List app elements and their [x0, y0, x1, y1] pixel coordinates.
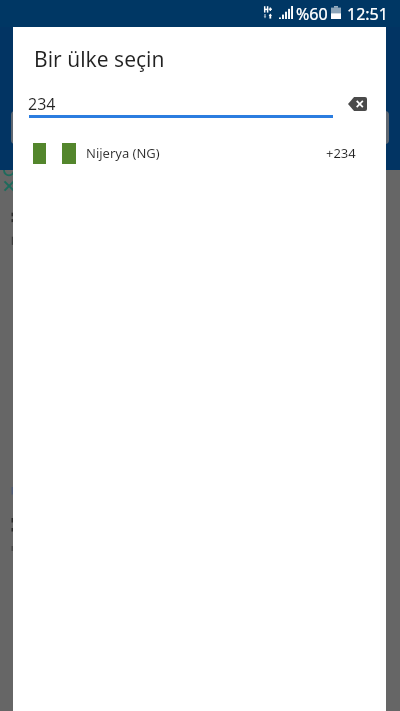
staticText: Bir ülke seçin: [34, 45, 165, 74]
staticText: +234: [326, 144, 356, 162]
staticText: 234: [28, 93, 56, 115]
staticText: %60: [296, 3, 328, 25]
button[interactable]: Nijerya (NG): [13, 135, 386, 171]
button[interactable]: Backspace: [341, 88, 373, 120]
staticText: 12:51: [347, 3, 388, 25]
staticText: Nijerya (NG): [86, 144, 160, 162]
